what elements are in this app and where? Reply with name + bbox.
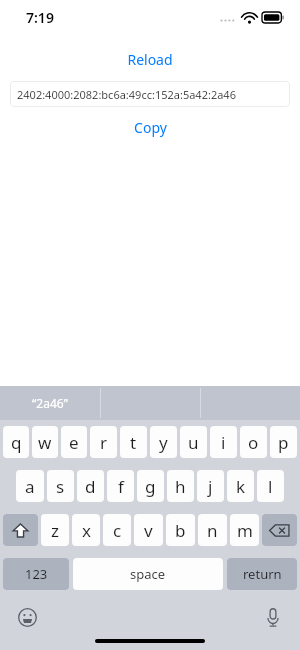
staticText: t <box>130 431 137 454</box>
button[interactable]: Shift <box>3 514 38 546</box>
button[interactable]: Emoji keyboard <box>12 602 42 632</box>
staticText: “2a46” <box>32 395 68 411</box>
button[interactable]: w <box>32 426 58 458</box>
button[interactable]: 2402:4000:2082:bc6a:49cc:152a:5a42:2a46 <box>10 81 290 107</box>
staticText: 123 <box>25 565 48 583</box>
staticText: c <box>113 519 122 542</box>
staticText: Reload <box>127 50 173 69</box>
button[interactable]: s <box>47 470 74 502</box>
button[interactable]: d <box>77 470 104 502</box>
button[interactable]: “2a46” <box>0 386 100 420</box>
button[interactable]: n <box>198 514 227 546</box>
staticText: o <box>248 431 259 454</box>
staticText: Copy <box>134 118 167 137</box>
button[interactable]: return <box>227 558 297 590</box>
button[interactable]: t <box>120 426 147 458</box>
staticText: space <box>130 565 166 583</box>
staticText: v <box>144 519 153 542</box>
button[interactable]: p <box>270 426 297 458</box>
button[interactable]: e <box>61 426 87 458</box>
button[interactable]: j <box>197 470 224 502</box>
button[interactable]: i <box>210 426 237 458</box>
staticText: 2402:4000:2082:bc6a:49cc:152a:5a42:2a46 <box>17 87 236 102</box>
button[interactable]: u <box>180 426 207 458</box>
staticText: u <box>188 431 199 454</box>
staticText: n <box>207 519 218 542</box>
button[interactable]: space <box>73 558 223 590</box>
staticText: a <box>25 475 35 498</box>
staticText: s <box>56 475 65 498</box>
button[interactable]: a <box>16 470 44 502</box>
staticText: p <box>278 431 289 454</box>
button[interactable]: k <box>227 470 254 502</box>
button[interactable]: f <box>107 470 134 502</box>
button[interactable]: Backspace <box>262 514 297 546</box>
staticText: g <box>145 475 156 498</box>
button[interactable]: q <box>3 426 29 458</box>
button[interactable]: x <box>72 514 100 546</box>
button[interactable]: 123 <box>3 558 69 590</box>
button[interactable]: m <box>230 514 259 546</box>
button[interactable]: l <box>257 470 284 502</box>
button[interactable]: b <box>166 514 195 546</box>
staticText: w <box>38 431 52 454</box>
button[interactable]: y <box>150 426 177 458</box>
staticText: d <box>85 475 96 498</box>
staticText: l <box>268 475 273 498</box>
staticText: j <box>208 475 213 498</box>
button[interactable]: Dictation <box>258 602 288 632</box>
button[interactable]: v <box>134 514 163 546</box>
staticText: z <box>51 519 59 542</box>
staticText: x <box>82 519 91 542</box>
staticText: k <box>236 475 246 498</box>
staticText: q <box>11 431 22 454</box>
staticText: m <box>237 519 253 542</box>
staticText: i <box>221 431 226 454</box>
staticText: h <box>175 475 186 498</box>
staticText: f <box>118 475 124 498</box>
button[interactable]: o <box>240 426 267 458</box>
button[interactable]: c <box>103 514 131 546</box>
staticText: y <box>159 431 168 454</box>
staticText: e <box>69 431 79 454</box>
button[interactable]: Copy <box>124 116 177 139</box>
button[interactable]: h <box>167 470 194 502</box>
button[interactable]: g <box>137 470 164 502</box>
staticText: 7:19 <box>26 8 54 27</box>
button[interactable]: z <box>41 514 69 546</box>
staticText: r <box>100 431 108 454</box>
staticText: return <box>243 565 282 583</box>
button[interactable]: Reload <box>117 48 183 71</box>
button[interactable]: r <box>90 426 117 458</box>
staticText: b <box>175 519 186 542</box>
